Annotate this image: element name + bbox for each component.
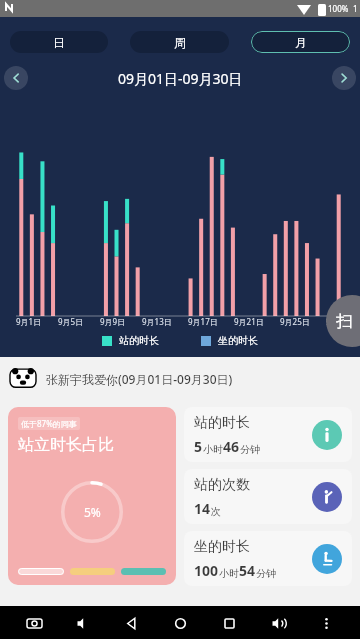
button[interactable]: 日 [10, 31, 108, 53]
button[interactable]: 低于87%的同事 [8, 407, 176, 585]
staticText: 站的时长 [119, 334, 159, 347]
staticText: 9月1日 [16, 316, 42, 327]
staticText: 低于87%的同事 [21, 418, 77, 429]
staticText: 站的次数 [194, 476, 250, 494]
staticText: 小时 [203, 443, 223, 456]
staticText: 站的时长 [194, 414, 250, 432]
staticText: 5 [194, 437, 203, 456]
button[interactable]: More options [311, 608, 341, 638]
staticText: 张新宇我爱你(09月01日-09月30日) [46, 371, 233, 387]
staticText: 5% [84, 504, 101, 520]
staticText: 1 [353, 3, 358, 14]
staticText: 小时 [219, 567, 239, 580]
button[interactable]: 周 [130, 31, 229, 53]
staticText: 次 [211, 505, 221, 518]
button[interactable]: Recents [214, 608, 244, 638]
button[interactable]: 月 [251, 31, 350, 53]
staticText: 分钟 [256, 567, 276, 580]
button[interactable]: 下一月 [332, 66, 356, 90]
button[interactable]: Volume up [263, 608, 293, 638]
staticText: 46 [223, 437, 240, 456]
button[interactable]: 坐的时长 [184, 531, 352, 586]
button[interactable]: Home [165, 608, 195, 638]
staticText: 9月5日 [58, 316, 84, 327]
staticText: 9月2 [326, 316, 344, 327]
staticText: 9月9日 [100, 316, 126, 327]
staticText: 9月17日 [188, 316, 218, 327]
staticText: 09月01日-09月30日 [118, 69, 243, 88]
staticText: 周 [174, 35, 186, 50]
staticText: 日 [53, 35, 65, 50]
staticText: 100 [194, 561, 219, 580]
button[interactable]: Back [116, 608, 146, 638]
button[interactable]: Volume down [68, 608, 98, 638]
staticText: 扫 [336, 311, 353, 332]
staticText: 坐的时长 [194, 538, 250, 556]
staticText: 分钟 [240, 443, 260, 456]
staticText: 站立时长占比 [18, 435, 114, 455]
staticText: 月 [295, 35, 307, 50]
staticText: 100% [328, 3, 349, 14]
button[interactable]: 扫一扫 [326, 295, 360, 347]
staticText: 54 [239, 561, 256, 580]
button[interactable]: 上一月 [4, 66, 28, 90]
staticText: 9月13日 [142, 316, 172, 327]
staticText: 9月25日 [280, 316, 310, 327]
staticText: 14 [194, 499, 211, 518]
button[interactable]: Screenshot [19, 608, 49, 638]
staticText: 9月21日 [234, 316, 264, 327]
staticText: 坐的时长 [218, 334, 258, 347]
button[interactable]: 站的次数 [184, 469, 352, 524]
button[interactable]: 站的时长 [184, 407, 352, 462]
